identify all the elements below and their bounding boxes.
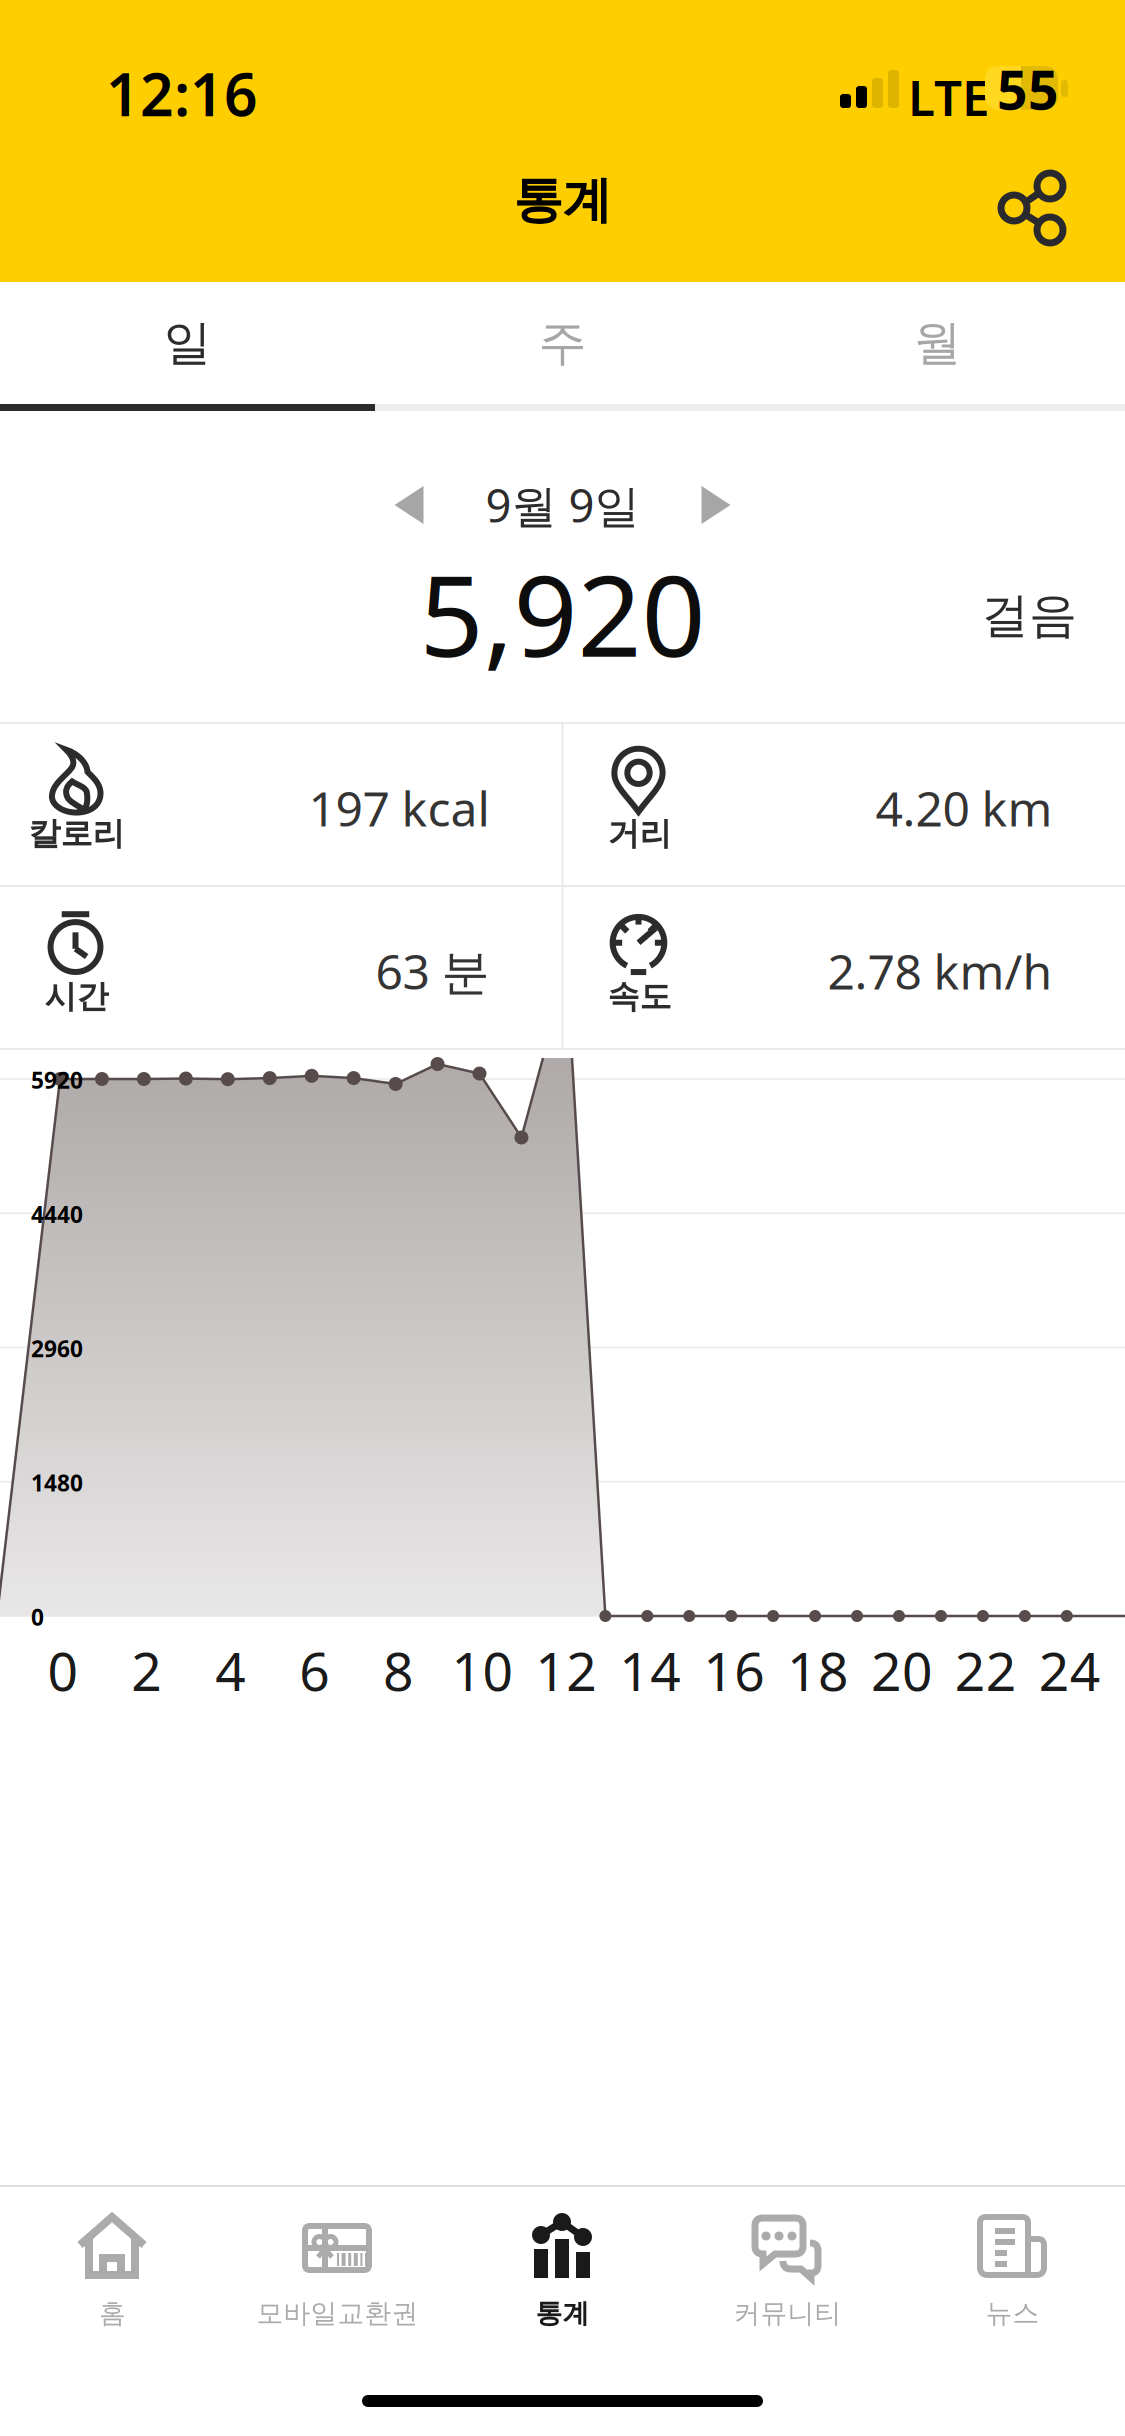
staticText: 20 <box>871 1635 933 1706</box>
staticText: 12:16 <box>106 54 258 132</box>
staticText: 1480 <box>31 1468 83 1498</box>
staticText: 12 <box>535 1635 597 1706</box>
staticText: 통계 <box>513 170 611 231</box>
staticText: 칼로리 <box>28 814 124 853</box>
staticText: 4 <box>215 1635 246 1706</box>
staticText: 커뮤니티 <box>733 2297 841 2330</box>
button[interactable]: 주 <box>375 282 750 404</box>
staticText: 197 kcal <box>308 776 489 840</box>
staticText: 6 <box>299 1635 330 1706</box>
staticText: 16 <box>703 1635 765 1706</box>
button[interactable]: Next day <box>679 464 752 546</box>
staticText: 뉴스 <box>985 2297 1039 2330</box>
staticText: 2960 <box>31 1333 83 1364</box>
staticText: 22 <box>955 1635 1017 1706</box>
staticText: 통계 <box>535 2297 589 2330</box>
staticText: 14 <box>619 1635 681 1706</box>
staticText: 거리 <box>607 814 671 853</box>
staticText: 8 <box>383 1635 414 1706</box>
staticText: 2 <box>131 1635 162 1706</box>
staticText: 9월 9일 <box>485 475 639 535</box>
staticText: 63 분 <box>375 939 489 1003</box>
staticText: 24 <box>1039 1635 1101 1706</box>
button[interactable]: 모바일교환권 <box>225 2187 450 2353</box>
staticText: 18 <box>787 1635 849 1706</box>
staticText: 4.20 km <box>875 776 1052 840</box>
staticText: 모바일교환권 <box>256 2297 418 2330</box>
button[interactable]: 일 <box>0 282 375 404</box>
button[interactable]: Previous day <box>372 464 445 546</box>
staticText: 속도 <box>607 977 671 1016</box>
staticText: 0 <box>31 1602 44 1632</box>
button[interactable]: 월 <box>750 282 1125 404</box>
button[interactable]: Share <box>988 162 1088 266</box>
staticText: 시간 <box>44 977 108 1016</box>
button[interactable]: 홈 <box>0 2187 225 2353</box>
button[interactable]: 뉴스 <box>900 2187 1125 2353</box>
staticText: 홈 <box>99 2297 126 2330</box>
staticText: 일 <box>163 313 211 372</box>
staticText: LTE <box>908 64 990 129</box>
staticText: 월 <box>913 313 961 372</box>
staticText: 2.78 km/h <box>827 939 1052 1003</box>
staticText: 4440 <box>31 1199 83 1229</box>
staticText: 55 <box>997 54 1059 124</box>
staticText: 10 <box>451 1635 513 1706</box>
button[interactable]: 통계 <box>450 2187 675 2353</box>
staticText: 5920 <box>31 1065 83 1095</box>
staticText: 걸음 <box>981 586 1077 645</box>
button[interactable]: 커뮤니티 <box>675 2187 900 2353</box>
staticText: 주 <box>538 313 586 372</box>
staticText: 0 <box>47 1635 78 1706</box>
staticText: 5,920 <box>419 539 705 688</box>
